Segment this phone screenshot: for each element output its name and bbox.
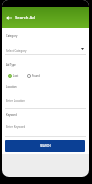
staticText: Select Category (6, 49, 27, 53)
button[interactable]: Back (2, 11, 15, 24)
staticText: Keyword (6, 113, 17, 117)
staticText: Lost (13, 74, 19, 78)
staticText: Search Ad (15, 15, 35, 21)
staticText: Category (6, 34, 18, 38)
button[interactable]: Found (27, 74, 40, 78)
staticText: Enter Keyword (6, 125, 26, 129)
staticText: Ad Type (6, 63, 16, 67)
button[interactable]: Lost (8, 74, 19, 78)
staticText: Location (6, 85, 17, 89)
staticText: Enter Location (6, 99, 25, 103)
staticText: Found (32, 74, 40, 78)
staticText: SEARCH (40, 144, 51, 148)
button[interactable]: SEARCH (5, 140, 85, 152)
